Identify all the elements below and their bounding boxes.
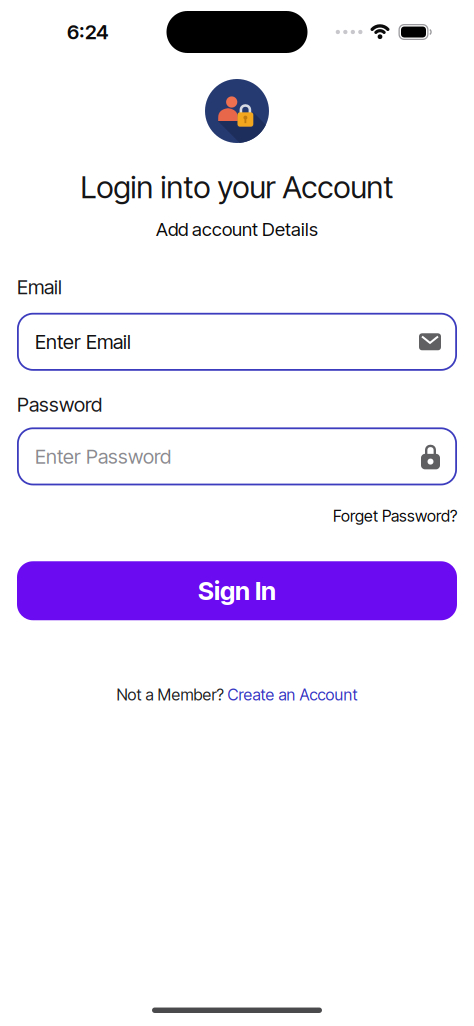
staticText: Create an Account [227, 685, 357, 704]
button[interactable]: Not a Member? [116, 685, 357, 704]
staticText: Email [17, 275, 62, 299]
staticText: Enter Password [35, 445, 171, 468]
staticText: Add account Details [156, 218, 318, 240]
button[interactable]: Sign In [17, 561, 457, 620]
staticText: Sign In [198, 576, 276, 606]
button[interactable]: Enter Password [17, 427, 457, 485]
staticText: 6:24 [67, 20, 109, 44]
staticText: Login into your Account [80, 169, 393, 205]
staticText: Forget Password? [333, 506, 457, 525]
staticText: Password [17, 393, 102, 416]
staticText: Enter Email [35, 330, 131, 354]
button[interactable]: Forget Password? [333, 506, 457, 525]
button[interactable]: Enter Email [17, 313, 457, 371]
staticText: Not a Member? [116, 685, 227, 704]
